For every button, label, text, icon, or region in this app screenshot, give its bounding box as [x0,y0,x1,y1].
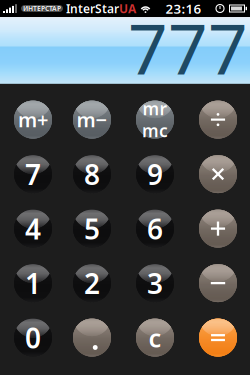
staticText: UA [119,0,136,16]
staticText: mr [142,97,167,120]
button[interactable]: 9 [136,155,174,193]
staticText: 23:16 [165,0,201,17]
staticText: 5 [84,210,100,247]
staticText: 1 [25,264,41,302]
staticText: 2 [84,264,100,302]
button[interactable]: 3 [136,264,174,302]
staticText: 0 [25,319,41,356]
button[interactable]: minus [199,264,237,302]
button[interactable]: 7 [14,155,52,193]
staticText: 7 [25,155,41,193]
button[interactable]: divide [199,101,237,139]
staticText: 777 [128,1,248,94]
button[interactable]: 4 [14,210,52,248]
button[interactable]: equals [199,319,237,357]
button[interactable]: 8 [73,155,111,193]
button[interactable]: 1 [14,264,52,302]
button[interactable]: memory subtract [73,101,111,139]
staticText: 4 [25,210,41,247]
staticText: 3 [147,264,163,302]
staticText: 8 [84,155,100,193]
staticText: InterStar [66,0,119,16]
button[interactable]: 0 [14,319,52,357]
staticText: c [148,321,161,354]
button[interactable]: plus [199,210,237,248]
button[interactable]: 5 [73,210,111,248]
staticText: m− [76,106,107,133]
button[interactable]: multiply [199,155,237,193]
button[interactable]: 6 [136,210,174,248]
staticText: 9 [147,155,163,193]
staticText: ИНТЕРСТАР [23,4,61,13]
staticText: 6 [147,210,163,247]
button[interactable]: 2 [73,264,111,302]
button[interactable]: clear [136,319,174,357]
staticText: mc [142,119,168,142]
staticText: m+ [18,106,48,133]
button[interactable]: memory add [14,101,52,139]
button[interactable]: decimal point [73,319,111,357]
button[interactable]: memory recall clear [136,101,174,139]
